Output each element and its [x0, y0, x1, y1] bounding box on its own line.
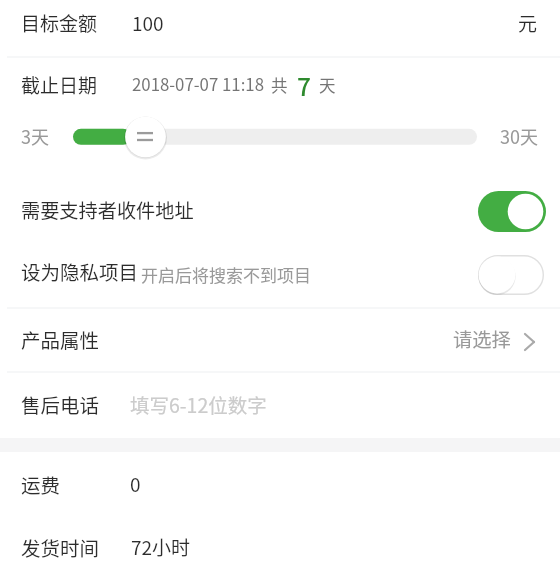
staticText: 0 — [130, 470, 141, 498]
staticText: 运费 — [21, 470, 61, 498]
staticText: 设为隐私项目 — [21, 257, 139, 285]
staticText: 截止日期 — [21, 71, 98, 99]
staticText: 天 — [319, 73, 336, 97]
button[interactable]: 发货时间 — [0, 516, 560, 577]
staticText: 72小时 — [131, 533, 191, 561]
staticText: 目标金额 — [21, 9, 98, 37]
button[interactable]: 运费 — [0, 452, 560, 516]
staticText: 3天 — [21, 123, 49, 149]
staticText: 100 — [132, 9, 164, 37]
button[interactable]: 目标金额 — [0, 0, 560, 56]
staticText: 填写6-12位数字 — [130, 390, 267, 418]
staticText: 7 — [297, 68, 311, 103]
button[interactable]: 天数滑块 — [0, 112, 560, 174]
staticText: 元 — [518, 9, 538, 37]
staticText: 产品属性 — [21, 325, 100, 353]
button[interactable]: 产品属性 — [0, 309, 560, 371]
staticText: 售后电话 — [21, 390, 100, 418]
button[interactable]: 需要支持者收件地址，已开启 — [478, 191, 546, 232]
staticText: 需要支持者收件地址 — [21, 196, 194, 224]
staticText: 共 — [271, 73, 288, 97]
button[interactable]: 设为隐私项目，已关闭 — [478, 255, 544, 295]
staticText: 发货时间 — [21, 533, 100, 561]
staticText: 2018-07-07 11:18 — [132, 72, 264, 96]
button[interactable]: 需要支持者收件地址 — [0, 174, 560, 241]
staticText: 开启后将搜索不到项目 — [141, 262, 311, 287]
staticText: 请选择 — [453, 325, 511, 353]
button[interactable]: 售后电话 — [0, 373, 560, 438]
staticText: 30天 — [500, 123, 538, 149]
button[interactable]: 截止日期 — [0, 58, 560, 112]
button[interactable]: 设为隐私项目 — [0, 241, 560, 307]
